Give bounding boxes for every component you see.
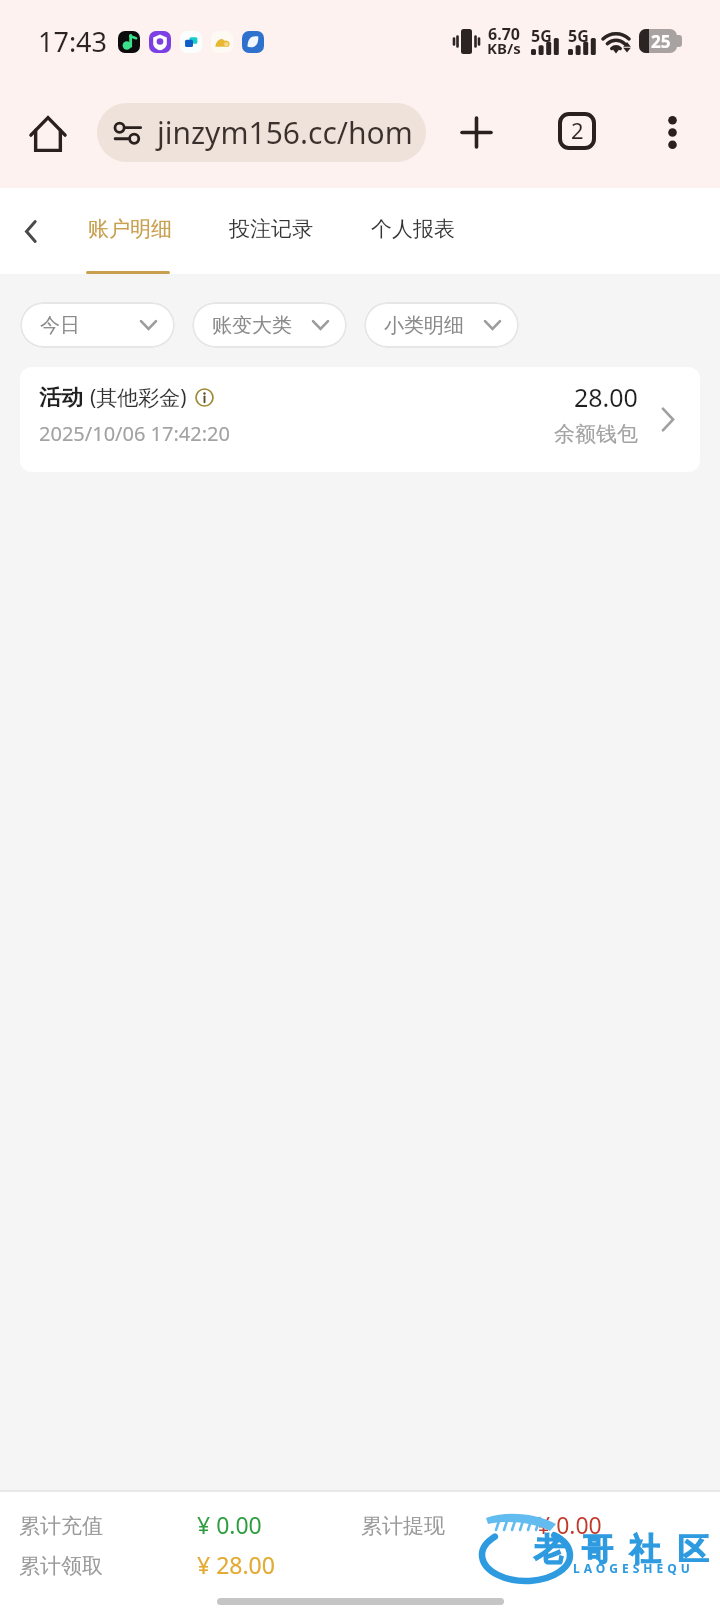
button[interactable]: 小类明细	[364, 302, 519, 348]
staticText: 小类明细	[384, 313, 464, 338]
staticText: 老哥社区	[525, 1530, 717, 1569]
button[interactable]: Tabs	[551, 105, 603, 157]
button[interactable]: 活动	[20, 367, 700, 472]
staticText: 2025/10/06 17:42:20	[39, 420, 230, 447]
staticText: 5G	[568, 25, 589, 47]
button[interactable]: 今日	[20, 302, 175, 348]
button[interactable]: 投注记录	[219, 188, 321, 274]
staticText: 累计充值	[19, 1513, 103, 1539]
staticText: 投注记录	[229, 216, 313, 242]
button[interactable]: 个人报表	[361, 188, 463, 274]
button[interactable]: 账变大类	[192, 302, 347, 348]
staticText: 账变大类	[212, 313, 292, 338]
staticText: 2	[571, 115, 584, 145]
button[interactable]: jinzym156.cc/hom	[97, 103, 426, 162]
button[interactable]: 账户明细	[78, 188, 180, 274]
staticText: ¥ 0.00	[537, 1509, 602, 1540]
staticText: ¥ 0.00	[197, 1509, 262, 1540]
staticText: KB/s	[487, 38, 521, 58]
staticText: LAOGESHEQU	[573, 1560, 694, 1576]
staticText: 累计提现	[361, 1513, 445, 1539]
button[interactable]: Home	[22, 108, 74, 160]
staticText: ¥ 28.00	[197, 1549, 275, 1580]
button[interactable]: More options	[646, 106, 698, 158]
staticText: 累计领取	[19, 1553, 103, 1579]
staticText: jinzym156.cc/hom	[157, 112, 413, 153]
staticText: 5G	[531, 25, 552, 47]
staticText: 今日	[40, 313, 80, 338]
staticText: 25	[651, 30, 671, 53]
staticText: 6.70	[488, 23, 520, 45]
staticText: 活动	[39, 384, 83, 412]
button[interactable]: New tab	[450, 106, 502, 158]
staticText: (其他彩金)	[90, 383, 187, 412]
staticText: 余额钱包	[554, 421, 638, 447]
button[interactable]: Back	[5, 205, 57, 257]
staticText: 个人报表	[371, 216, 455, 242]
staticText: 17:43	[38, 23, 108, 60]
staticText: 28.00	[574, 380, 638, 414]
staticText: 账户明细	[88, 216, 172, 242]
